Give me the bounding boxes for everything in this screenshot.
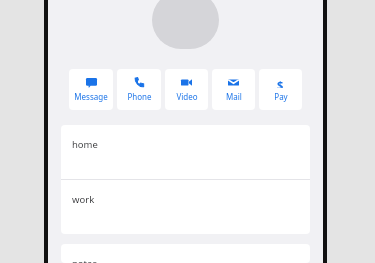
button[interactable]: Mail — [212, 69, 255, 110]
button[interactable]: Message — [69, 69, 113, 110]
staticText: notes — [72, 257, 97, 263]
staticText: Mail — [226, 91, 242, 102]
button[interactable]: Video — [165, 69, 208, 110]
staticText: work — [72, 193, 95, 206]
button[interactable]: Pay — [259, 69, 302, 110]
staticText: Pay — [274, 91, 288, 102]
staticText: Video — [176, 91, 198, 102]
staticText: Phone — [127, 91, 152, 102]
other: Message — [86, 77, 97, 88]
staticText: Message — [74, 91, 108, 102]
staticText: $ — [277, 77, 284, 88]
other: Mail — [228, 77, 239, 88]
staticText: home — [72, 138, 98, 151]
button[interactable]: notes — [61, 244, 310, 263]
button[interactable]: work — [61, 180, 310, 234]
other: Pay — [275, 77, 286, 88]
button[interactable]: Phone — [117, 69, 161, 110]
other: Video — [181, 77, 192, 88]
other: Phone — [134, 77, 145, 88]
button[interactable]: home — [61, 125, 310, 179]
